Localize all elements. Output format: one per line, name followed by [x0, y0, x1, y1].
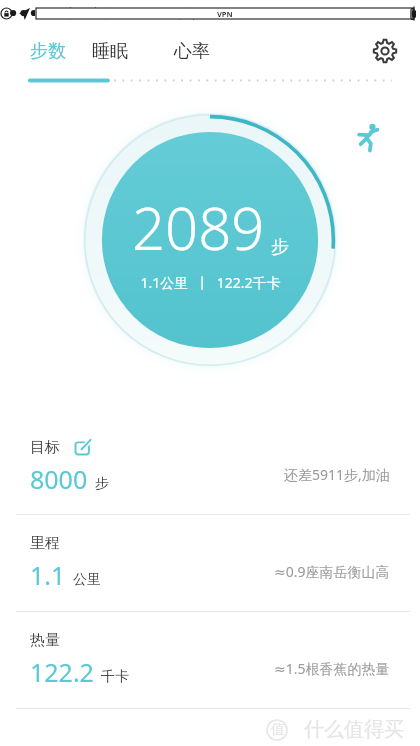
staticText: 目标	[30, 438, 60, 457]
staticText: 122.2	[30, 655, 94, 689]
button[interactable]: Edit goal	[72, 437, 92, 457]
staticText: 还差5911步,加油	[284, 465, 390, 484]
staticText: 睡眠	[92, 40, 128, 63]
staticText: 公里	[73, 571, 101, 589]
staticText: 值	[271, 721, 285, 739]
staticText: 下午9:34	[174, 4, 226, 22]
staticText: 千卡	[101, 668, 129, 686]
staticText: 中国电信	[64, 5, 116, 21]
staticText: 步数	[30, 40, 66, 63]
staticText: VPN	[217, 9, 233, 19]
staticText: ≈0.9座南岳衡山高	[274, 562, 390, 581]
staticText: ≈1.5根香蕉的热量	[274, 659, 390, 678]
button[interactable]: 目标	[0, 418, 420, 514]
staticText: 热量	[30, 631, 60, 650]
button[interactable]: 热量	[0, 612, 420, 708]
button[interactable]: 2089	[74, 104, 346, 376]
button[interactable]: 心率	[174, 28, 236, 74]
staticText: 1.1公里 丨 122.2千卡	[140, 273, 281, 292]
staticText: 里程	[30, 534, 60, 553]
staticText: 心率	[174, 40, 210, 63]
button[interactable]: 里程	[0, 515, 420, 611]
button[interactable]: 睡眠	[92, 28, 174, 74]
staticText: 步	[271, 236, 289, 259]
button[interactable]: 步数	[30, 28, 92, 74]
staticText: 1.1	[30, 558, 66, 592]
button[interactable]: Settings	[364, 30, 406, 72]
button[interactable]: Running activity	[352, 120, 386, 154]
staticText: 8000	[30, 462, 88, 496]
staticText: 步	[95, 475, 109, 493]
staticText: 2089	[132, 188, 265, 267]
staticText: 什么值得买	[304, 717, 404, 742]
